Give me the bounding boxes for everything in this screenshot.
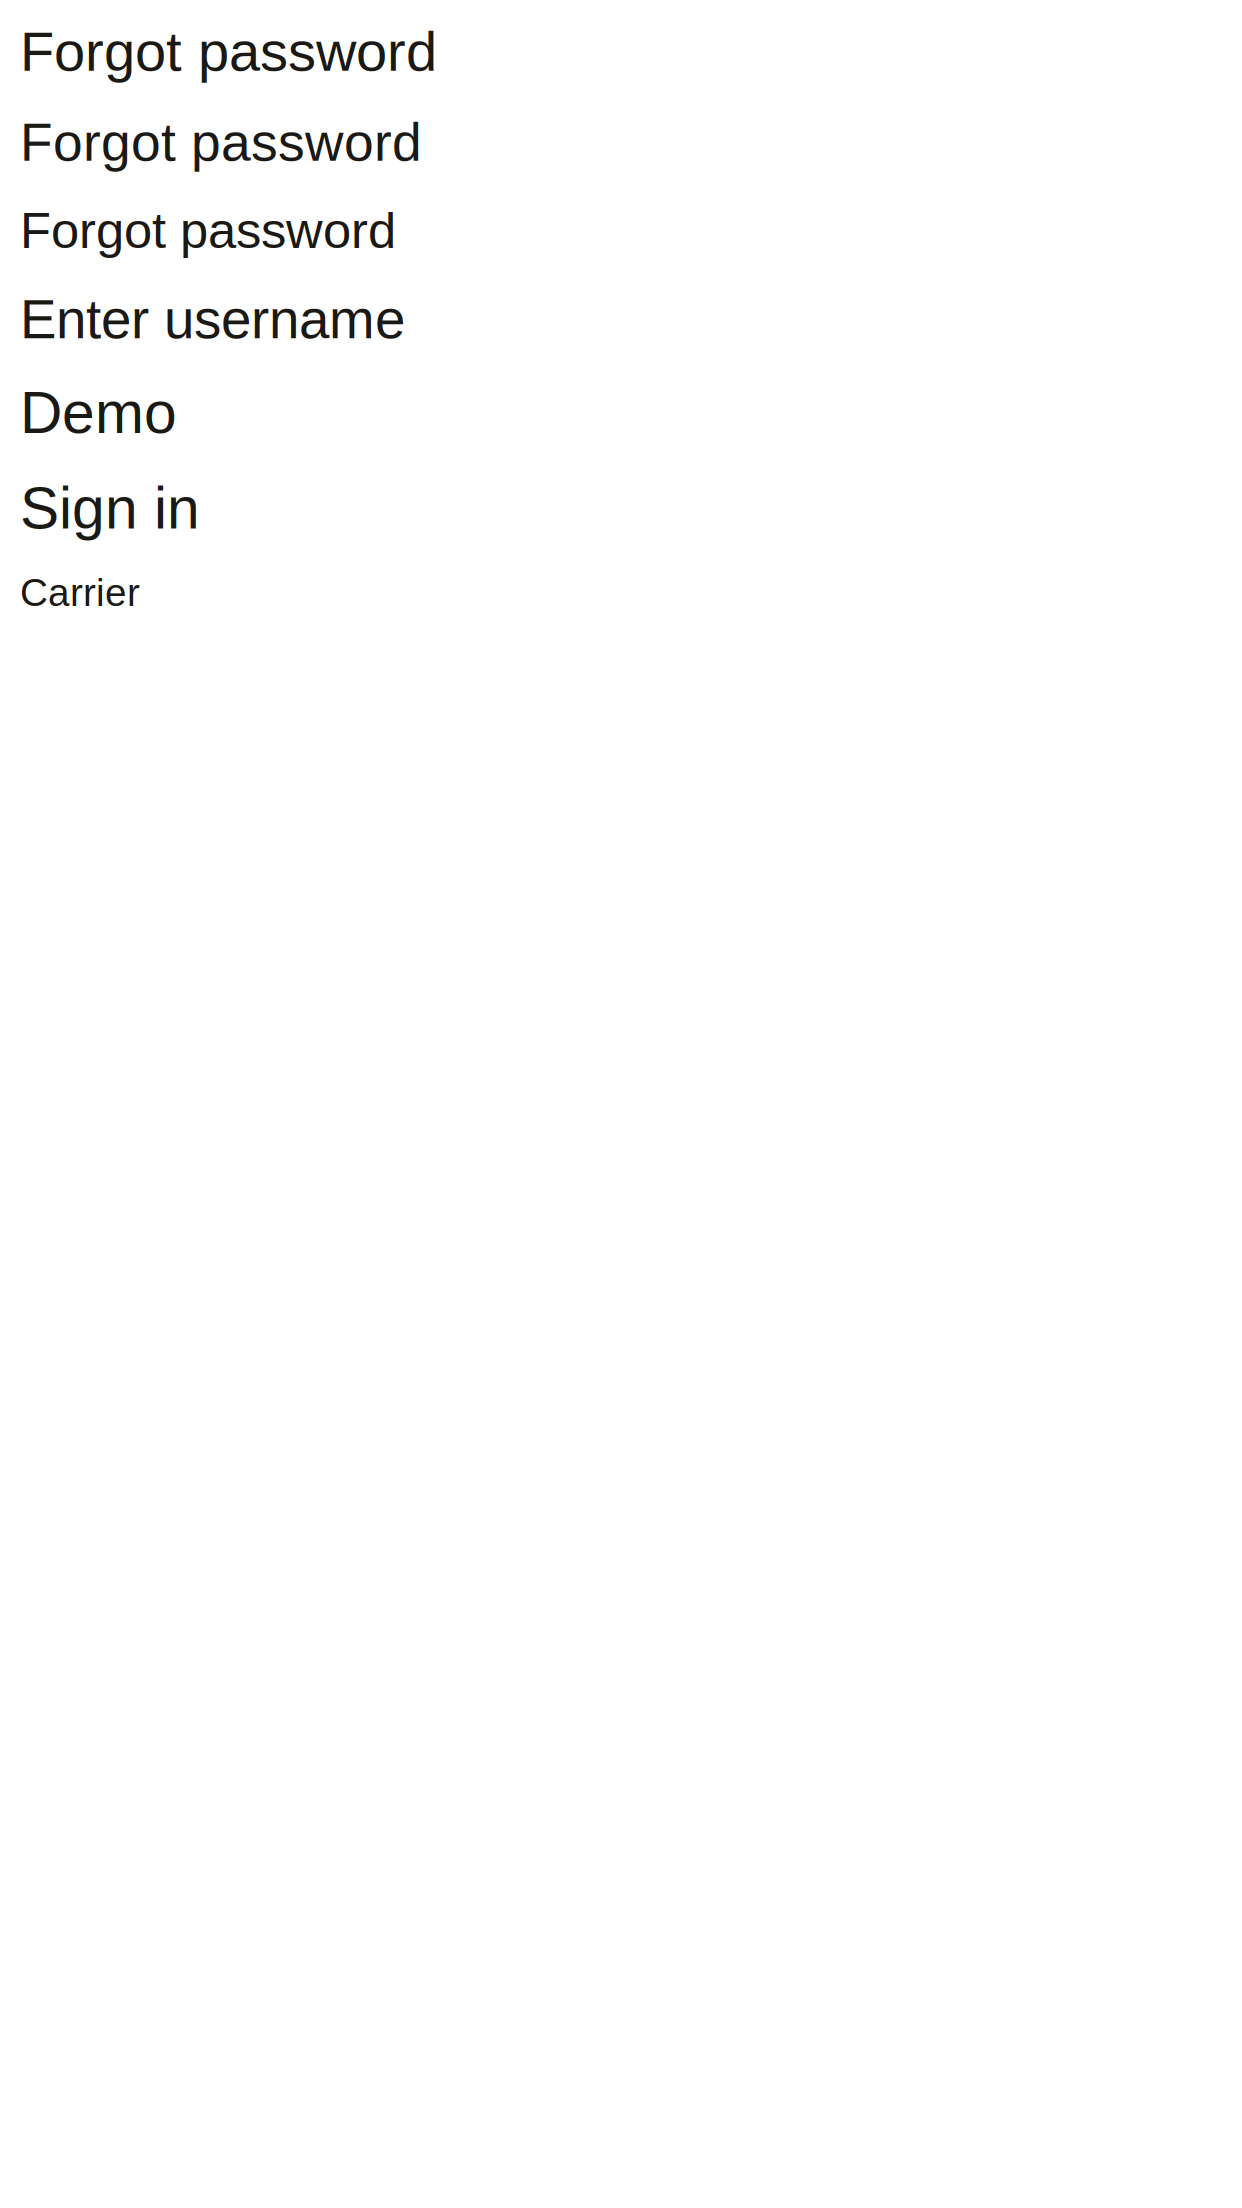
staticText: Carrier <box>20 571 140 614</box>
staticText: Forgot password <box>20 113 422 172</box>
staticText: Forgot password <box>20 20 437 83</box>
staticText: Sign in <box>20 475 200 541</box>
staticText: Forgot password <box>20 202 396 259</box>
staticText: Demo <box>20 380 177 445</box>
staticText: Enter username <box>20 289 405 350</box>
